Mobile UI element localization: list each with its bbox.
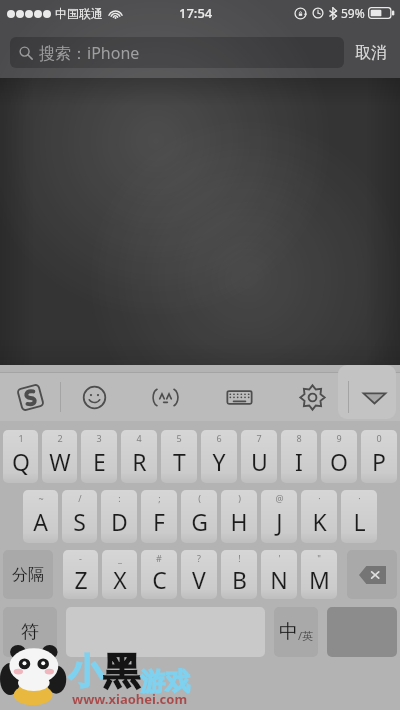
button[interactable]: 取消	[344, 43, 390, 63]
staticText: E	[93, 446, 106, 477]
button[interactable]: )	[221, 490, 257, 543]
staticText: J	[276, 506, 283, 537]
staticText: B	[232, 564, 247, 595]
staticText: )	[238, 492, 241, 504]
staticText: "	[317, 552, 321, 564]
staticText: U	[251, 446, 268, 477]
button[interactable]: Hide keyboard	[349, 373, 400, 421]
staticText: 7	[256, 432, 262, 444]
button[interactable]: Settings	[276, 373, 348, 421]
button[interactable]: 符	[3, 607, 57, 657]
button[interactable]: Keyboard layout	[202, 373, 276, 421]
staticText: C	[152, 564, 167, 595]
staticText: W	[49, 446, 71, 477]
staticText: 8	[296, 432, 302, 444]
staticText: 黑	[103, 648, 140, 695]
button[interactable]: ;	[141, 490, 177, 543]
button[interactable]: 1	[3, 430, 38, 483]
button[interactable]: 5	[161, 430, 197, 483]
staticText: V	[192, 564, 206, 595]
staticText: O	[330, 446, 348, 477]
button[interactable]: 7	[241, 430, 277, 483]
staticText: (	[198, 492, 201, 504]
button[interactable]: @	[261, 490, 297, 543]
button[interactable]: ~	[23, 490, 58, 543]
staticText: 4	[136, 432, 142, 444]
staticText: 小	[68, 649, 103, 693]
staticText: @	[275, 492, 284, 504]
staticText: www.xiaohei.com	[72, 690, 188, 708]
staticText: G	[191, 506, 208, 537]
staticText: X	[113, 564, 127, 595]
button[interactable]: '	[261, 550, 297, 599]
button[interactable]: !	[221, 550, 257, 599]
button[interactable]: 6	[201, 430, 237, 483]
button[interactable]: ·	[301, 490, 337, 543]
staticText: M	[309, 564, 330, 595]
staticText: D	[111, 506, 128, 537]
staticText: #	[156, 552, 162, 564]
staticText: 中国联通	[55, 6, 103, 21]
staticText: 5	[176, 432, 182, 444]
staticText: I	[295, 446, 303, 477]
button[interactable]: -	[63, 550, 98, 599]
button[interactable]: ?	[181, 550, 217, 599]
staticText: 符	[21, 621, 39, 644]
button[interactable]: 2	[42, 430, 77, 483]
staticText: K	[312, 506, 327, 537]
button[interactable]: 9	[321, 430, 357, 483]
staticText: Y	[212, 446, 226, 477]
button[interactable]: "	[301, 550, 337, 599]
staticText: 2	[57, 432, 63, 444]
staticText: _	[118, 552, 122, 564]
staticText: /	[78, 492, 82, 504]
button[interactable]: Emoji	[61, 373, 128, 421]
staticText: 取消	[355, 43, 387, 63]
button[interactable]: (	[181, 490, 217, 543]
button[interactable]: 4	[121, 430, 157, 483]
staticText: Q	[12, 446, 30, 477]
staticText: ~	[38, 492, 44, 504]
button[interactable]: /	[62, 490, 97, 543]
staticText: ·	[358, 492, 361, 504]
staticText: H	[230, 506, 248, 537]
button[interactable]: Sogou input method	[0, 373, 60, 421]
button[interactable]: :	[101, 490, 137, 543]
staticText: F	[153, 506, 165, 537]
staticText: 59%	[341, 5, 365, 21]
staticText: 游戏	[140, 666, 190, 697]
button[interactable]: ·	[341, 490, 377, 543]
button[interactable]: _	[102, 550, 137, 599]
button[interactable]: Space	[66, 607, 265, 657]
staticText: ·	[318, 492, 321, 504]
staticText: R	[132, 446, 147, 477]
staticText: -	[79, 552, 82, 564]
staticText: 0	[376, 432, 382, 444]
button[interactable]: Kaomoji	[128, 373, 202, 421]
button[interactable]: #	[141, 550, 177, 599]
staticText: 6	[216, 432, 222, 444]
staticText: !	[238, 552, 241, 564]
staticText: '	[278, 552, 281, 564]
staticText: :	[118, 492, 121, 504]
button[interactable]: 3	[81, 430, 117, 483]
staticText: 分隔	[12, 565, 44, 585]
staticText: N	[270, 564, 288, 595]
staticText: 9	[336, 432, 342, 444]
staticText: S	[73, 506, 86, 537]
staticText: A	[33, 506, 48, 537]
button[interactable]: Backspace	[347, 550, 397, 599]
button[interactable]: 搜索：iPhone	[10, 37, 344, 68]
staticText: Z	[74, 564, 88, 595]
button[interactable]: Chinese English toggle	[274, 607, 318, 657]
staticText: L	[353, 506, 366, 537]
staticText: 中	[279, 620, 298, 644]
staticText: T	[173, 446, 186, 477]
button[interactable]: 8	[281, 430, 317, 483]
button[interactable]: 0	[361, 430, 397, 483]
staticText: 17:54	[179, 4, 213, 22]
staticText: /英	[298, 628, 314, 643]
staticText: ?	[197, 552, 201, 564]
button[interactable]: 分隔	[3, 550, 53, 599]
